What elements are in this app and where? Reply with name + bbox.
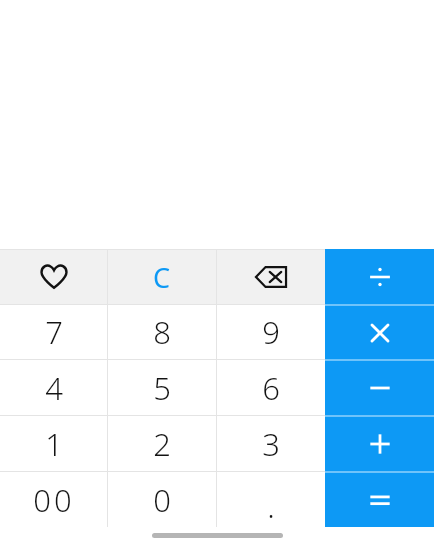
- button[interactable]: .: [217, 472, 325, 527]
- button[interactable]: 4: [0, 360, 107, 415]
- button[interactable]: Subtract: [325, 361, 434, 415]
- button[interactable]: C: [108, 250, 216, 304]
- staticText: 3: [262, 423, 280, 465]
- staticText: 6: [262, 367, 280, 409]
- button[interactable]: Add: [325, 417, 434, 471]
- button[interactable]: Backspace: [217, 250, 325, 304]
- button[interactable]: 3: [217, 416, 325, 471]
- button[interactable]: 0: [108, 472, 216, 527]
- button[interactable]: Divide: [325, 249, 434, 304]
- staticText: 4: [45, 367, 63, 409]
- staticText: 0: [153, 479, 171, 521]
- staticText: 7: [45, 311, 63, 353]
- button[interactable]: Favourite: [0, 250, 107, 304]
- staticText: 5: [153, 367, 171, 409]
- button[interactable]: 5: [108, 360, 216, 415]
- staticText: .: [267, 485, 275, 527]
- button[interactable]: 6: [217, 360, 325, 415]
- staticText: C: [153, 259, 171, 296]
- button[interactable]: 9: [217, 305, 325, 359]
- button[interactable]: 2: [108, 416, 216, 471]
- button[interactable]: 00: [0, 472, 107, 527]
- staticText: 9: [262, 311, 280, 353]
- staticText: 2: [153, 423, 171, 465]
- staticText: 8: [153, 311, 171, 353]
- staticText: 00: [33, 479, 75, 521]
- button[interactable]: Multiply: [325, 306, 434, 359]
- button[interactable]: 8: [108, 305, 216, 359]
- staticText: 1: [45, 423, 63, 465]
- button[interactable]: 1: [0, 416, 107, 471]
- button[interactable]: 7: [0, 305, 107, 359]
- button[interactable]: Equals: [325, 473, 434, 527]
